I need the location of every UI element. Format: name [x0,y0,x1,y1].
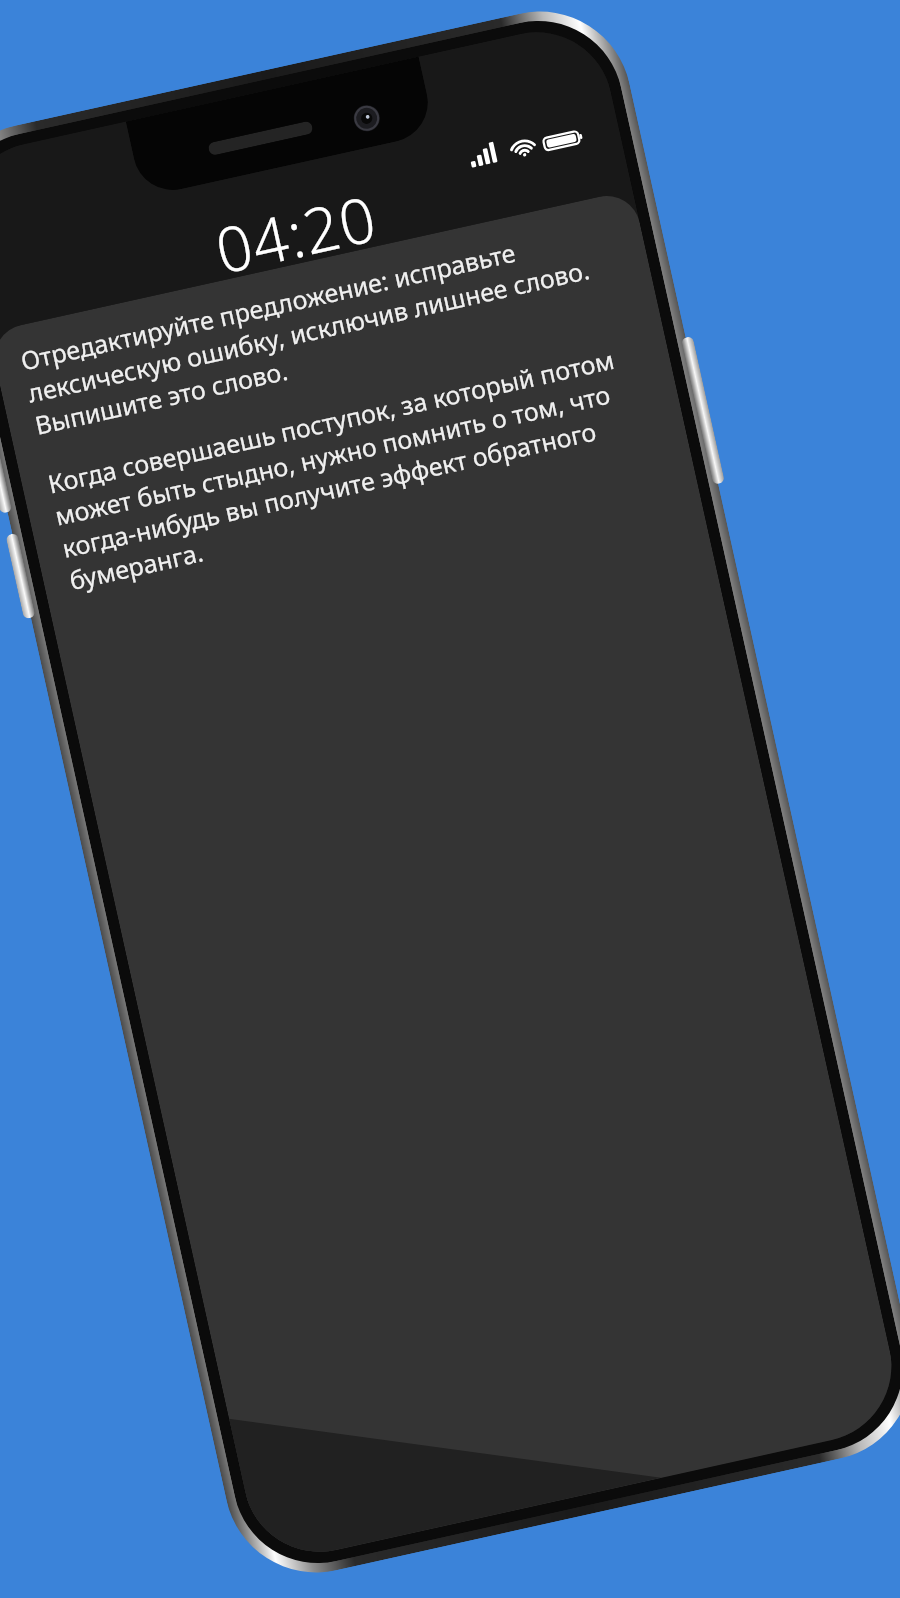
button[interactable]: Power [681,336,725,485]
staticText: 04:20 [208,175,384,292]
staticText: Когда совершаешь поступок, за который по… [45,335,671,597]
button[interactable]: Volume down [5,533,36,619]
button[interactable]: Отредактируйте предложение: исправьте ле… [0,189,900,1566]
button[interactable]: Volume up [0,427,12,514]
staticText: Отредактируйте предложение: исправьте ле… [17,212,636,442]
